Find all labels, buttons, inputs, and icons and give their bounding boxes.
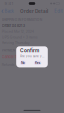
staticText: 9:41 <box>4 1 13 6</box>
staticText: No <box>21 61 25 65</box>
staticText: Yes <box>35 61 41 65</box>
staticText: PAYMENT <box>2 48 18 52</box>
button[interactable]: Back <box>0 7 14 15</box>
staticText: SHIPPING INFORMATION <box>2 18 43 22</box>
staticText: Order #48213 <box>2 23 25 28</box>
staticText: Arriving Thursday <box>2 41 30 45</box>
staticText: Cancel this order <box>2 54 31 59</box>
button[interactable]: Edit <box>54 7 64 15</box>
staticText: Order Detail <box>20 8 48 14</box>
button[interactable]: No <box>20 61 26 65</box>
staticText: Are you sure you want to do this? <box>20 55 44 58</box>
staticText: Edit <box>54 9 62 14</box>
staticText: Placed Mar 12, 2024 <box>2 29 34 34</box>
staticText: Refunds post in 3-5 days <box>2 63 43 67</box>
button[interactable]: Cancel this order <box>2 53 31 60</box>
staticText: Back <box>5 9 14 14</box>
staticText: Confirm <box>20 48 39 53</box>
button[interactable]: Yes <box>34 61 41 65</box>
